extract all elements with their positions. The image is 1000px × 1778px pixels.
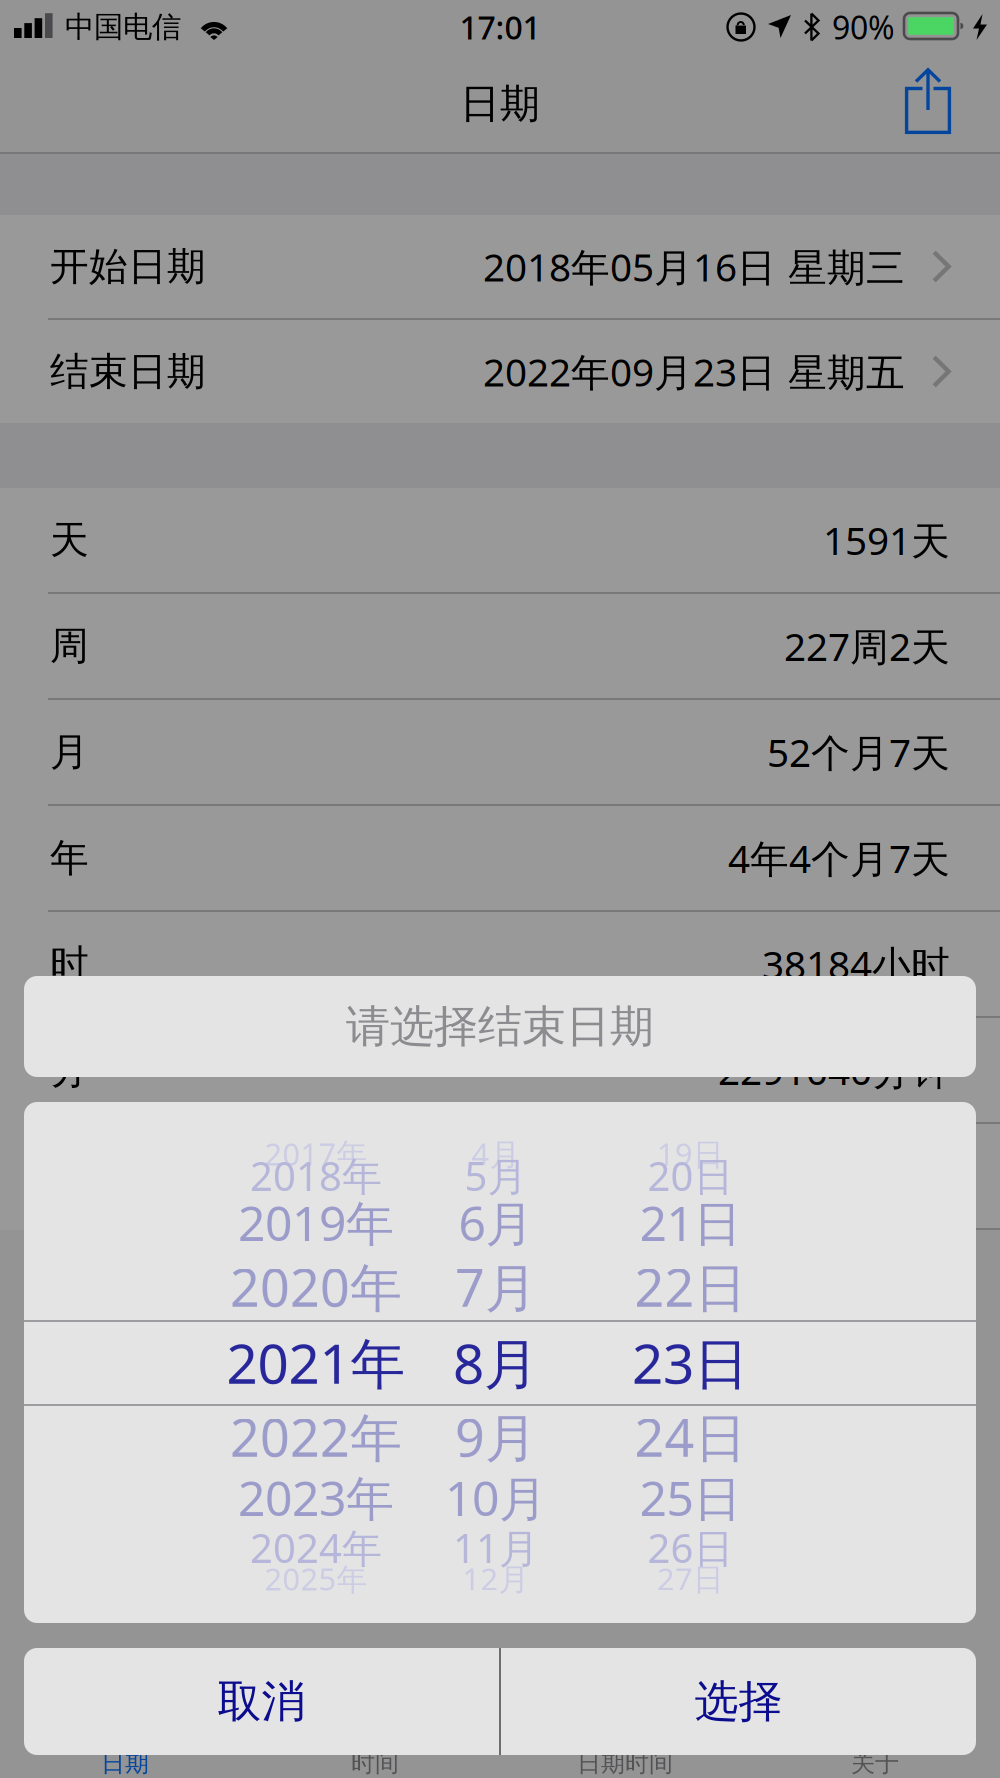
- button[interactable]: 关于: [750, 1730, 1000, 1778]
- staticText: 2017年: [264, 1133, 367, 1174]
- staticText: 90%: [832, 6, 895, 48]
- staticText: 21日: [639, 1191, 741, 1254]
- button[interactable]: 取消: [24, 1648, 499, 1755]
- staticText: 日期: [101, 1748, 149, 1778]
- staticText: 2025年: [264, 1558, 367, 1599]
- staticText: 日期时间: [577, 1748, 673, 1778]
- staticText: 中国电信: [65, 9, 181, 45]
- staticText: 天: [50, 516, 89, 564]
- staticText: 24日: [634, 1402, 746, 1471]
- staticText: 结束日期: [50, 348, 206, 395]
- staticText: 2291040分钟: [718, 1044, 950, 1096]
- button[interactable]: 时间: [250, 1730, 500, 1778]
- staticText: 2018年05月16日 星期三: [483, 241, 905, 292]
- staticText: 4年4个月7天: [728, 832, 950, 884]
- staticText: 17:01: [459, 6, 540, 48]
- staticText: 开始日期: [50, 243, 206, 290]
- staticText: 月: [50, 728, 89, 776]
- button[interactable]: 结束日期: [0, 320, 1000, 423]
- staticText: 2022年09月23日 星期五: [483, 346, 905, 397]
- staticText: 52个月7天: [767, 726, 950, 778]
- staticText: 5月: [464, 1149, 527, 1202]
- button[interactable]: 日期时间: [500, 1730, 750, 1778]
- staticText: 请选择结束日期: [346, 999, 654, 1053]
- staticText: 137462400秒: [713, 1150, 950, 1202]
- staticText: 26日: [647, 1521, 733, 1574]
- staticText: 8月: [453, 1326, 539, 1399]
- staticText: 2024年: [250, 1521, 382, 1574]
- button[interactable]: 选择: [501, 1648, 976, 1755]
- staticText: 22日: [634, 1252, 746, 1321]
- staticText: 23日: [632, 1326, 749, 1399]
- staticText: 2019年: [238, 1191, 394, 1254]
- staticText: 2020年: [230, 1252, 402, 1321]
- staticText: 日期: [460, 79, 540, 128]
- staticText: 年: [50, 834, 89, 882]
- staticText: 227周2天: [784, 620, 950, 672]
- staticText: 6月: [458, 1191, 533, 1254]
- staticText: 2018年: [250, 1149, 382, 1202]
- staticText: 2023年: [238, 1466, 394, 1529]
- staticText: 分: [50, 1046, 89, 1094]
- staticText: 38184小时: [762, 938, 950, 990]
- staticText: 时间: [351, 1748, 399, 1778]
- button[interactable]: 日期: [0, 1730, 250, 1778]
- button[interactable]: Share: [865, 58, 1000, 150]
- staticText: 周: [50, 622, 89, 670]
- staticText: 关于: [851, 1748, 899, 1778]
- staticText: 20日: [647, 1149, 733, 1202]
- staticText: 25日: [639, 1466, 741, 1529]
- staticText: 2021年: [226, 1326, 405, 1399]
- staticText: 取消: [217, 1674, 305, 1728]
- staticText: 9月: [455, 1402, 537, 1471]
- staticText: 11月: [453, 1521, 539, 1574]
- staticText: 19日: [657, 1133, 724, 1174]
- staticText: 7月: [455, 1252, 537, 1321]
- button[interactable]: 开始日期: [0, 215, 1000, 318]
- staticText: 4月: [471, 1133, 520, 1174]
- staticText: 2022年: [230, 1402, 402, 1471]
- staticText: 选择: [694, 1674, 782, 1728]
- staticText: 12月: [462, 1558, 529, 1599]
- staticText: 时: [50, 940, 89, 988]
- staticText: 27日: [657, 1558, 724, 1599]
- staticText: 10月: [445, 1466, 547, 1529]
- staticText: 1591天: [823, 514, 950, 566]
